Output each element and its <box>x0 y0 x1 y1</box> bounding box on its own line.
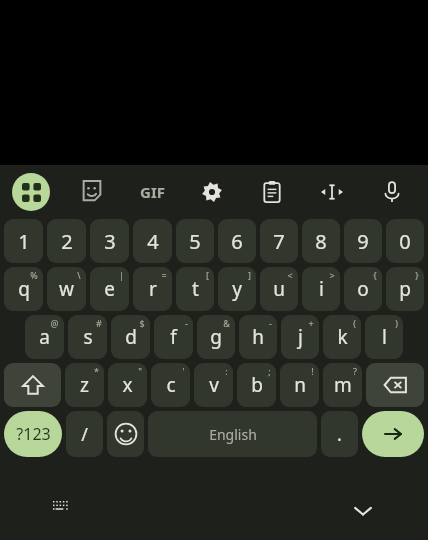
staticText: f <box>170 324 177 350</box>
button[interactable]: 4 <box>133 219 172 263</box>
staticText: " <box>138 365 142 377</box>
staticText: ( <box>353 317 356 329</box>
staticText: # <box>96 317 102 329</box>
staticText: 2 <box>61 228 73 255</box>
staticText: ) <box>395 317 398 329</box>
button[interactable]: h <box>239 315 277 359</box>
staticText: s <box>83 324 93 350</box>
staticText: 1 <box>18 228 30 255</box>
button[interactable]: . <box>321 411 358 457</box>
staticText: ?123 <box>16 423 51 445</box>
button[interactable]: 8 <box>302 219 340 263</box>
button[interactable]: Shift <box>4 363 61 407</box>
button[interactable]: f <box>154 315 193 359</box>
button[interactable]: Voice input <box>362 165 422 219</box>
staticText: \ <box>77 269 81 281</box>
staticText: i <box>319 276 324 302</box>
button[interactable]: g <box>197 315 235 359</box>
button[interactable]: j <box>281 315 319 359</box>
button[interactable]: m <box>323 363 362 407</box>
staticText: 9 <box>357 228 369 255</box>
button[interactable]: q <box>4 267 43 311</box>
staticText: ' <box>182 365 185 377</box>
button[interactable]: r <box>133 267 172 311</box>
button[interactable]: s <box>68 315 107 359</box>
staticText: < <box>287 269 293 281</box>
button[interactable]: Switch keyboard <box>40 488 86 534</box>
button[interactable]: w <box>47 267 86 311</box>
staticText: ] <box>248 269 251 281</box>
button[interactable]: l <box>365 315 403 359</box>
staticText: y <box>232 276 242 302</box>
staticText: x <box>122 372 133 398</box>
button[interactable]: 0 <box>386 219 424 263</box>
button[interactable]: Stickers <box>62 165 122 219</box>
staticText: z <box>80 372 89 398</box>
staticText: p <box>399 276 411 302</box>
staticText: - <box>185 317 188 329</box>
staticText: j <box>298 324 303 350</box>
button[interactable]: English <box>148 411 317 457</box>
button[interactable]: 7 <box>260 219 298 263</box>
staticText: English <box>209 425 257 444</box>
staticText: | <box>119 269 124 281</box>
button[interactable]: 5 <box>176 219 214 263</box>
staticText: $ <box>139 317 145 329</box>
button[interactable]: p <box>386 267 424 311</box>
staticText: u <box>273 276 285 302</box>
button[interactable]: o <box>344 267 382 311</box>
staticText: m <box>334 372 352 398</box>
staticText: 5 <box>189 228 201 255</box>
staticText: 7 <box>273 228 285 255</box>
button[interactable]: Enter <box>362 411 424 457</box>
button[interactable]: a <box>25 315 64 359</box>
button[interactable]: x <box>108 363 147 407</box>
button[interactable]: Settings <box>182 165 242 219</box>
staticText: / <box>81 422 88 447</box>
staticText: 3 <box>104 228 116 255</box>
staticText: : <box>225 365 228 377</box>
button[interactable]: t <box>176 267 214 311</box>
button[interactable]: c <box>151 363 190 407</box>
button[interactable]: z <box>65 363 104 407</box>
button[interactable]: 9 <box>344 219 382 263</box>
button[interactable]: ?123 <box>4 411 62 457</box>
button[interactable]: GIF <box>122 165 182 219</box>
button[interactable]: i <box>302 267 340 311</box>
button[interactable]: Text editing <box>302 165 362 219</box>
staticText: GIF <box>140 182 165 202</box>
staticText: = <box>161 269 167 281</box>
button[interactable]: Hide keyboard <box>340 488 386 534</box>
staticText: d <box>125 324 137 350</box>
button[interactable]: Apps <box>0 165 62 219</box>
button[interactable]: y <box>218 267 256 311</box>
button[interactable]: e <box>90 267 129 311</box>
staticText: 4 <box>147 228 159 255</box>
staticText: t <box>192 276 199 302</box>
button[interactable]: Clipboard <box>242 165 302 219</box>
button[interactable]: d <box>111 315 150 359</box>
staticText: } <box>415 269 419 281</box>
button[interactable]: n <box>280 363 319 407</box>
button[interactable]: Backspace <box>366 363 424 407</box>
button[interactable]: 3 <box>90 219 129 263</box>
staticText: v <box>209 372 219 398</box>
staticText: l <box>382 324 387 350</box>
staticText: o <box>357 276 369 302</box>
button[interactable]: / <box>66 411 103 457</box>
staticText: a <box>39 324 50 350</box>
button[interactable]: Emoji <box>107 411 144 457</box>
staticText: > <box>329 269 335 281</box>
staticText: 0 <box>399 228 411 255</box>
staticText: - <box>269 317 272 329</box>
staticText: q <box>18 276 30 302</box>
button[interactable]: 6 <box>218 219 256 263</box>
button[interactable]: b <box>237 363 276 407</box>
button[interactable]: u <box>260 267 298 311</box>
button[interactable]: 2 <box>47 219 86 263</box>
button[interactable]: k <box>323 315 361 359</box>
button[interactable]: 1 <box>4 219 43 263</box>
staticText: @ <box>50 317 59 329</box>
staticText: e <box>104 276 115 302</box>
button[interactable]: v <box>194 363 233 407</box>
